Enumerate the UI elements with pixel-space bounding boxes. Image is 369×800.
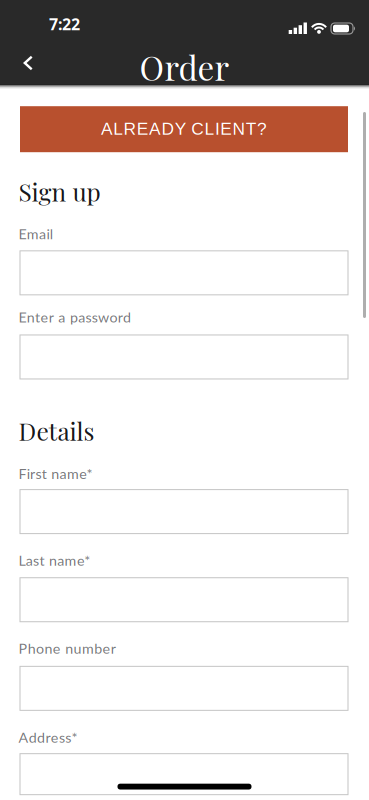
staticText: Address* xyxy=(18,728,78,746)
staticText: Enter a password xyxy=(18,308,131,325)
button[interactable]: Text field xyxy=(20,666,348,710)
staticText: ALREADY CLIENT? xyxy=(101,119,267,138)
button[interactable]: Back xyxy=(0,47,33,79)
button[interactable]: Text field xyxy=(20,251,348,295)
button[interactable]: Text field xyxy=(20,754,348,795)
button[interactable]: Text field xyxy=(20,335,348,379)
button[interactable]: Text field xyxy=(20,578,348,622)
staticText: Email xyxy=(18,225,53,242)
staticText: Details xyxy=(18,414,94,447)
button[interactable]: ALREADY CLIENT? xyxy=(20,106,348,152)
staticText: Order xyxy=(139,45,229,89)
staticText: 7:22 xyxy=(49,13,80,35)
button[interactable]: Text field xyxy=(20,490,348,534)
staticText: Phone number xyxy=(18,640,116,657)
staticText: First name* xyxy=(18,465,92,482)
staticText: Sign up xyxy=(18,175,100,208)
staticText: Last name* xyxy=(18,552,90,569)
